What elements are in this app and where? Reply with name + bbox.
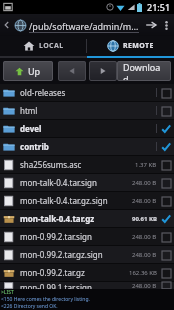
button[interactable]: sha256sums.asc [0, 156, 174, 173]
staticText: mon-0.99.2.tar.sign [20, 231, 132, 242]
staticText: sha256sums.asc [20, 159, 135, 170]
staticText: mon-0.99.2.tar.gz [20, 267, 129, 278]
staticText: 248.00 B [132, 233, 157, 241]
staticText: mon-talk-0.4.tar.gz [20, 213, 132, 224]
button[interactable]: Download [117, 61, 171, 81]
staticText: <150 Here comes the directory listing. [1, 296, 90, 303]
staticText: 248.00 B [132, 179, 157, 187]
button[interactable]: old-releases [0, 84, 174, 101]
button[interactable]: contrib [0, 138, 174, 155]
staticText: devel [20, 123, 156, 134]
staticText: contrib [20, 141, 156, 152]
button[interactable]: Not selected [161, 196, 171, 206]
button[interactable]: Selected [161, 142, 171, 152]
staticText: 21:51 [147, 1, 171, 13]
button[interactable]: Not selected [161, 178, 171, 188]
staticText: old-releases [20, 87, 156, 98]
button[interactable]: Not selected [161, 282, 171, 289]
button[interactable]: Site [12, 17, 28, 33]
button[interactable]: Next [89, 61, 117, 81]
button[interactable]: mon-0.99.1.tar.sign [0, 282, 174, 289]
staticText: mon-0.99.1.tar.sign [20, 282, 132, 289]
button[interactable]: Previous [58, 61, 86, 81]
button[interactable]: LOCAL [0, 36, 86, 56]
staticText: 90.61 KB [132, 215, 157, 223]
staticText: 248.00 B [132, 251, 157, 259]
staticText: mon-talk-0.4.tar.sign [20, 177, 132, 188]
button[interactable]: Up [3, 61, 53, 81]
button[interactable]: Not selected [161, 268, 171, 278]
staticText: >LIST [1, 289, 14, 296]
button[interactable]: mon-0.99.2.tar.sign [0, 228, 174, 245]
staticText: 162.36 KB [129, 269, 157, 277]
staticText: <226 Directory send OK. [1, 303, 58, 310]
button[interactable]: More options [160, 14, 172, 36]
button[interactable]: Not selected [161, 88, 171, 98]
staticText: mon-0.99.2.tar.gz.sign [20, 249, 132, 260]
staticText: 1.37 KB [135, 161, 157, 169]
button[interactable]: mon-0.99.2.tar.gz [0, 264, 174, 281]
button[interactable]: Not selected [161, 106, 171, 116]
button[interactable]: html [0, 102, 174, 119]
staticText: html [20, 105, 156, 116]
button[interactable]: Selected [161, 214, 171, 224]
staticText: 248.00 B [132, 197, 157, 205]
button[interactable]: /pub/software/admin/mon [29, 18, 139, 33]
button[interactable]: Not selected [161, 160, 171, 170]
button[interactable]: mon-talk-0.4.tar.gz.sign [0, 192, 174, 209]
button[interactable]: REMOTE [87, 36, 174, 56]
staticText: mon-talk-0.4.tar.gz.sign [20, 195, 132, 206]
staticText: Download [123, 61, 165, 81]
button[interactable]: Not selected [161, 232, 171, 242]
staticText: /pub/software/admin/mon [29, 20, 139, 32]
button[interactable]: mon-talk-0.4.tar.sign [0, 174, 174, 191]
button[interactable]: devel [0, 120, 174, 137]
button[interactable]: mon-talk-0.4.tar.gz [0, 210, 174, 227]
button[interactable]: Go [142, 16, 160, 34]
button[interactable]: Not selected [161, 250, 171, 260]
button[interactable]: Back [2, 20, 12, 30]
staticText: LOCAL [39, 41, 64, 51]
button[interactable]: Selected [161, 124, 171, 134]
button[interactable]: mon-0.99.2.tar.gz.sign [0, 246, 174, 263]
staticText: Up [28, 65, 41, 77]
staticText: 248.00 B [132, 282, 157, 289]
staticText: REMOTE [123, 41, 154, 51]
